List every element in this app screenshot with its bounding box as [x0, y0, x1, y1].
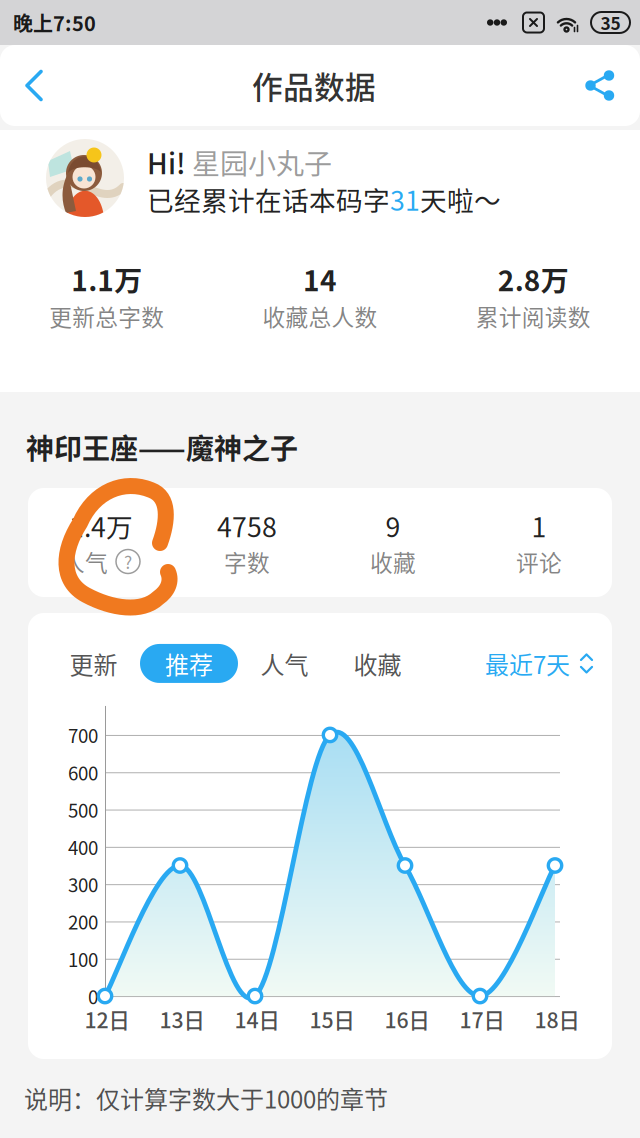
staticText: 400: [68, 833, 98, 860]
staticText: 天啦～: [420, 180, 501, 218]
staticText: 200: [68, 908, 98, 935]
staticText: 说明：仅计算字数大于1000的章节: [24, 1081, 388, 1115]
button[interactable]: 返回: [12, 45, 56, 126]
staticText: 评论: [516, 545, 562, 578]
staticText: 最近7天: [485, 646, 570, 681]
staticText: 1.1万: [71, 259, 142, 299]
button[interactable]: 推荐: [140, 644, 238, 683]
staticText: 600: [68, 759, 98, 786]
staticText: 18日: [534, 1004, 579, 1034]
staticText: 31: [390, 180, 420, 218]
button[interactable]: 收藏: [331, 644, 424, 683]
staticText: 300: [68, 871, 98, 898]
staticText: 1.4万: [69, 506, 133, 545]
staticText: 15日: [309, 1004, 354, 1034]
staticText: 500: [68, 796, 98, 823]
staticText: 收藏总人数: [262, 300, 377, 332]
staticText: 累计阅读数: [476, 300, 591, 332]
staticText: 更新总字数: [49, 300, 164, 332]
staticText: 35: [600, 10, 620, 35]
staticText: 人气: [260, 646, 308, 681]
button[interactable]: 更新: [47, 644, 140, 683]
staticText: 已经累计在话本码字: [147, 180, 390, 218]
staticText: 0: [88, 982, 98, 1009]
staticText: 字数: [224, 545, 270, 578]
button[interactable]: 人气: [238, 644, 331, 683]
staticText: 1: [531, 506, 546, 545]
staticText: 14日: [234, 1004, 279, 1034]
staticText: 16日: [384, 1004, 429, 1034]
staticText: 100: [68, 945, 98, 972]
staticText: Hi!: [147, 142, 192, 182]
staticText: 4758: [217, 506, 277, 545]
staticText: 晚上7:50: [13, 8, 96, 37]
staticText: 推荐: [165, 646, 213, 681]
staticText: ?: [124, 549, 132, 574]
staticText: 700: [68, 721, 98, 748]
staticText: 2.8万: [498, 259, 569, 299]
staticText: 神印王座——魔神之子: [26, 427, 298, 467]
button[interactable]: 最近7天: [485, 644, 594, 683]
staticText: 星园小丸子: [192, 142, 332, 182]
staticText: 收藏: [370, 545, 416, 578]
staticText: 17日: [459, 1004, 504, 1034]
button[interactable]: 分享: [572, 45, 628, 126]
staticText: 12日: [84, 1004, 129, 1034]
staticText: 14: [303, 259, 337, 299]
staticText: 作品数据: [252, 63, 376, 108]
staticText: 人气: [62, 545, 108, 578]
staticText: 更新: [69, 646, 117, 681]
staticText: 9: [385, 506, 400, 545]
staticText: 收藏: [353, 646, 401, 681]
staticText: 13日: [159, 1004, 204, 1034]
